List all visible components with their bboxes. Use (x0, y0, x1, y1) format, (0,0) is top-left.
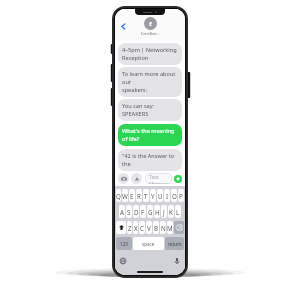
staticText: 123 (120, 241, 128, 247)
button[interactable]: D (133, 205, 139, 218)
staticText: Text Message (149, 173, 172, 184)
staticText: B (154, 224, 159, 232)
button[interactable]: E (129, 189, 135, 202)
button[interactable]: S (126, 205, 132, 218)
staticText: N (161, 224, 166, 232)
button[interactable]: U (157, 189, 163, 202)
button[interactable]: 123 (116, 237, 132, 250)
button[interactable]: What's the meaning of life? (118, 124, 182, 146)
button[interactable]: Q (116, 189, 121, 202)
button[interactable]: E (141, 17, 159, 36)
staticText: A (120, 208, 124, 216)
staticText: G (148, 208, 153, 216)
staticText: L (176, 208, 180, 216)
button[interactable]: A (119, 205, 125, 218)
button[interactable]: L (175, 205, 181, 218)
button[interactable]: H (154, 205, 160, 218)
button[interactable]: N (160, 221, 166, 234)
staticText: U (158, 192, 163, 200)
button[interactable]: T (143, 189, 149, 202)
button[interactable]: P (178, 189, 184, 202)
button[interactable]: Text Message (145, 173, 172, 184)
button[interactable]: O (171, 189, 177, 202)
button[interactable]: To learn more about our (118, 67, 182, 97)
button[interactable]: I (164, 189, 170, 202)
button[interactable]: 4–5pm | Networking Reception (118, 43, 182, 65)
button[interactable]: Z (127, 221, 132, 234)
staticText: space (142, 241, 155, 247)
staticText: T (144, 192, 148, 200)
button[interactable]: M (167, 221, 173, 234)
staticText: X (134, 224, 138, 232)
button[interactable]: Shift (116, 221, 126, 234)
staticText: K (169, 208, 173, 216)
staticText: J (163, 208, 165, 216)
staticText: 4–5pm | Networking Reception (122, 46, 178, 62)
staticText: Y (151, 192, 155, 200)
button[interactable]: F (140, 205, 146, 218)
staticText: H (155, 208, 160, 216)
staticText: S (127, 208, 131, 216)
staticText: R (137, 192, 141, 200)
staticText: W (122, 192, 128, 200)
button[interactable]: J (161, 205, 167, 218)
staticText: O (172, 192, 177, 200)
button[interactable]: space (133, 237, 164, 250)
button[interactable]: X (133, 221, 138, 234)
button[interactable]: "42 is the Answer to the (118, 149, 182, 171)
button[interactable]: Apps (131, 173, 142, 184)
staticText: D (134, 208, 139, 216)
staticText: P (179, 192, 183, 200)
staticText: "42 is the Answer to the (122, 152, 178, 168)
button[interactable]: Backspace (174, 221, 184, 234)
staticText: Z (128, 224, 132, 232)
staticText: C (140, 224, 144, 232)
staticText: return (168, 241, 182, 247)
staticText: V (147, 224, 151, 232)
button[interactable]: Camera (118, 173, 129, 184)
staticText: speakers: (122, 86, 148, 94)
staticText: E (149, 20, 153, 28)
staticText: I (166, 192, 169, 200)
staticText: You can say: SPEAKERS (122, 102, 178, 118)
button[interactable]: R (136, 189, 142, 202)
staticText: Q (116, 192, 121, 200)
button[interactable]: Back (118, 21, 128, 31)
button[interactable]: B (153, 221, 159, 234)
staticText: E (130, 192, 134, 200)
button[interactable]: G (147, 205, 153, 218)
button[interactable]: W (122, 189, 128, 202)
staticText: M (167, 224, 173, 232)
button[interactable]: C (139, 221, 145, 234)
button[interactable]: V (146, 221, 152, 234)
button[interactable]: You can say: SPEAKERS (118, 99, 182, 121)
button[interactable]: Send (174, 175, 182, 183)
staticText: To learn more about our (122, 70, 178, 86)
staticText: EventBots › (141, 31, 159, 36)
button[interactable]: Dictate (173, 257, 181, 265)
staticText: What's the meaning of life? (122, 127, 178, 143)
button[interactable]: Y (150, 189, 156, 202)
button[interactable]: return (165, 237, 184, 250)
button[interactable]: K (168, 205, 174, 218)
staticText: F (141, 208, 145, 216)
button[interactable]: Change keyboard (119, 257, 127, 265)
